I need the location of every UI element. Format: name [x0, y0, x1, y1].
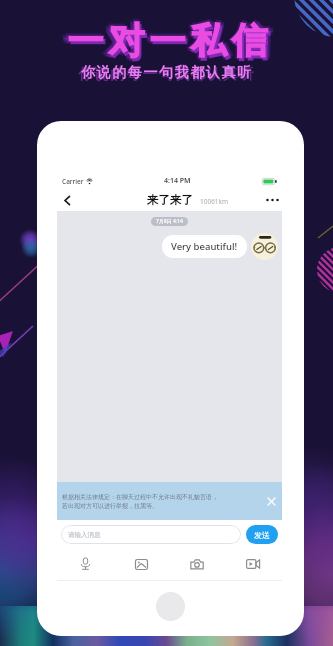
staticText: 发送 — [254, 530, 270, 540]
staticText: 请输入消息 — [68, 531, 101, 539]
staticText: 一对一私信 — [65, 18, 270, 63]
button[interactable]: More options — [262, 190, 282, 210]
button[interactable]: 发送 — [246, 525, 278, 544]
staticText: Carrier — [62, 177, 84, 186]
staticText: 一对一私信 — [65, 17, 275, 64]
button[interactable]: Close notice — [264, 494, 278, 508]
staticText: 一对一私信 — [67, 21, 272, 66]
staticText: 10061km — [200, 197, 229, 206]
button[interactable]: Send image — [126, 549, 156, 579]
staticText: Very beautiful! — [171, 240, 238, 253]
staticText: 来了来了 — [147, 193, 193, 207]
staticText: 一对一私信 — [59, 17, 269, 64]
button[interactable]: Video call — [238, 549, 268, 579]
button[interactable]: Take photo — [182, 549, 212, 579]
staticText: 你说的每一句我都认真听 — [81, 64, 253, 82]
staticText: 7月8日 4:14 — [156, 218, 183, 225]
staticText: 一对一私信 — [64, 19, 274, 66]
staticText: 一对一私信 — [62, 20, 272, 67]
button[interactable]: 请输入消息 — [61, 525, 241, 544]
button[interactable]: Back — [57, 190, 77, 210]
button[interactable]: Voice message — [70, 549, 100, 579]
staticText: 根据相关法律规定：在聊天过程中不允许出现不礼貌言语， 若出现对方可以进行举报，拉… — [62, 493, 264, 510]
staticText: 一对一私信 — [60, 19, 270, 66]
staticText: 一对一私信 — [62, 15, 272, 62]
staticText: 4:14 PM — [164, 176, 191, 186]
staticText: 你说的每一句我都认真听 — [78, 65, 256, 83]
